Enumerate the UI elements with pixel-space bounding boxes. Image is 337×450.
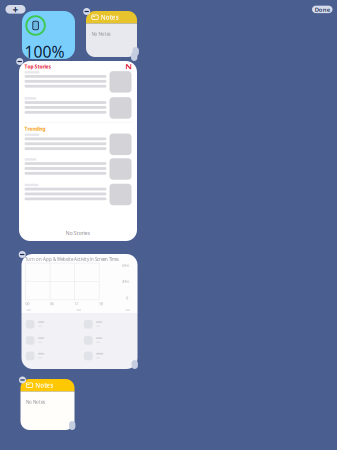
staticText: 12 [74, 301, 78, 306]
staticText: 0 [126, 295, 128, 301]
button[interactable]: Notes [86, 11, 137, 57]
staticText: Notes [35, 381, 53, 389]
button[interactable]: Notes [20, 379, 74, 430]
staticText: 30m [121, 278, 129, 284]
button[interactable]: Done [312, 6, 332, 13]
button[interactable]: 100% [22, 11, 75, 59]
staticText: No Notes [26, 399, 45, 405]
staticText: + [12, 2, 18, 16]
staticText: Done [315, 5, 330, 13]
staticText: No Stories [65, 229, 90, 236]
staticText: 00 [25, 301, 29, 306]
button[interactable]: Remove widget [19, 251, 26, 258]
staticText: 100% [24, 41, 64, 62]
button[interactable]: Add widget [5, 5, 25, 14]
button[interactable]: Remove widget [16, 58, 23, 65]
staticText: Turn on App & Website Activity in Screen… [25, 256, 119, 262]
button[interactable]: Remove widget [83, 8, 90, 15]
staticText: 18 [99, 301, 103, 306]
button[interactable]: Turn on App & Website Activity in Screen… [21, 254, 137, 369]
staticText: 06 [50, 301, 54, 306]
staticText: 60m [121, 262, 129, 268]
staticText: Trending [24, 125, 45, 132]
staticText: Notes [101, 13, 119, 21]
button[interactable]: Top Stories [19, 61, 137, 241]
staticText: No Notes [91, 31, 110, 37]
staticText: Top Stories [24, 63, 50, 70]
button[interactable]: Remove widget [19, 376, 26, 383]
